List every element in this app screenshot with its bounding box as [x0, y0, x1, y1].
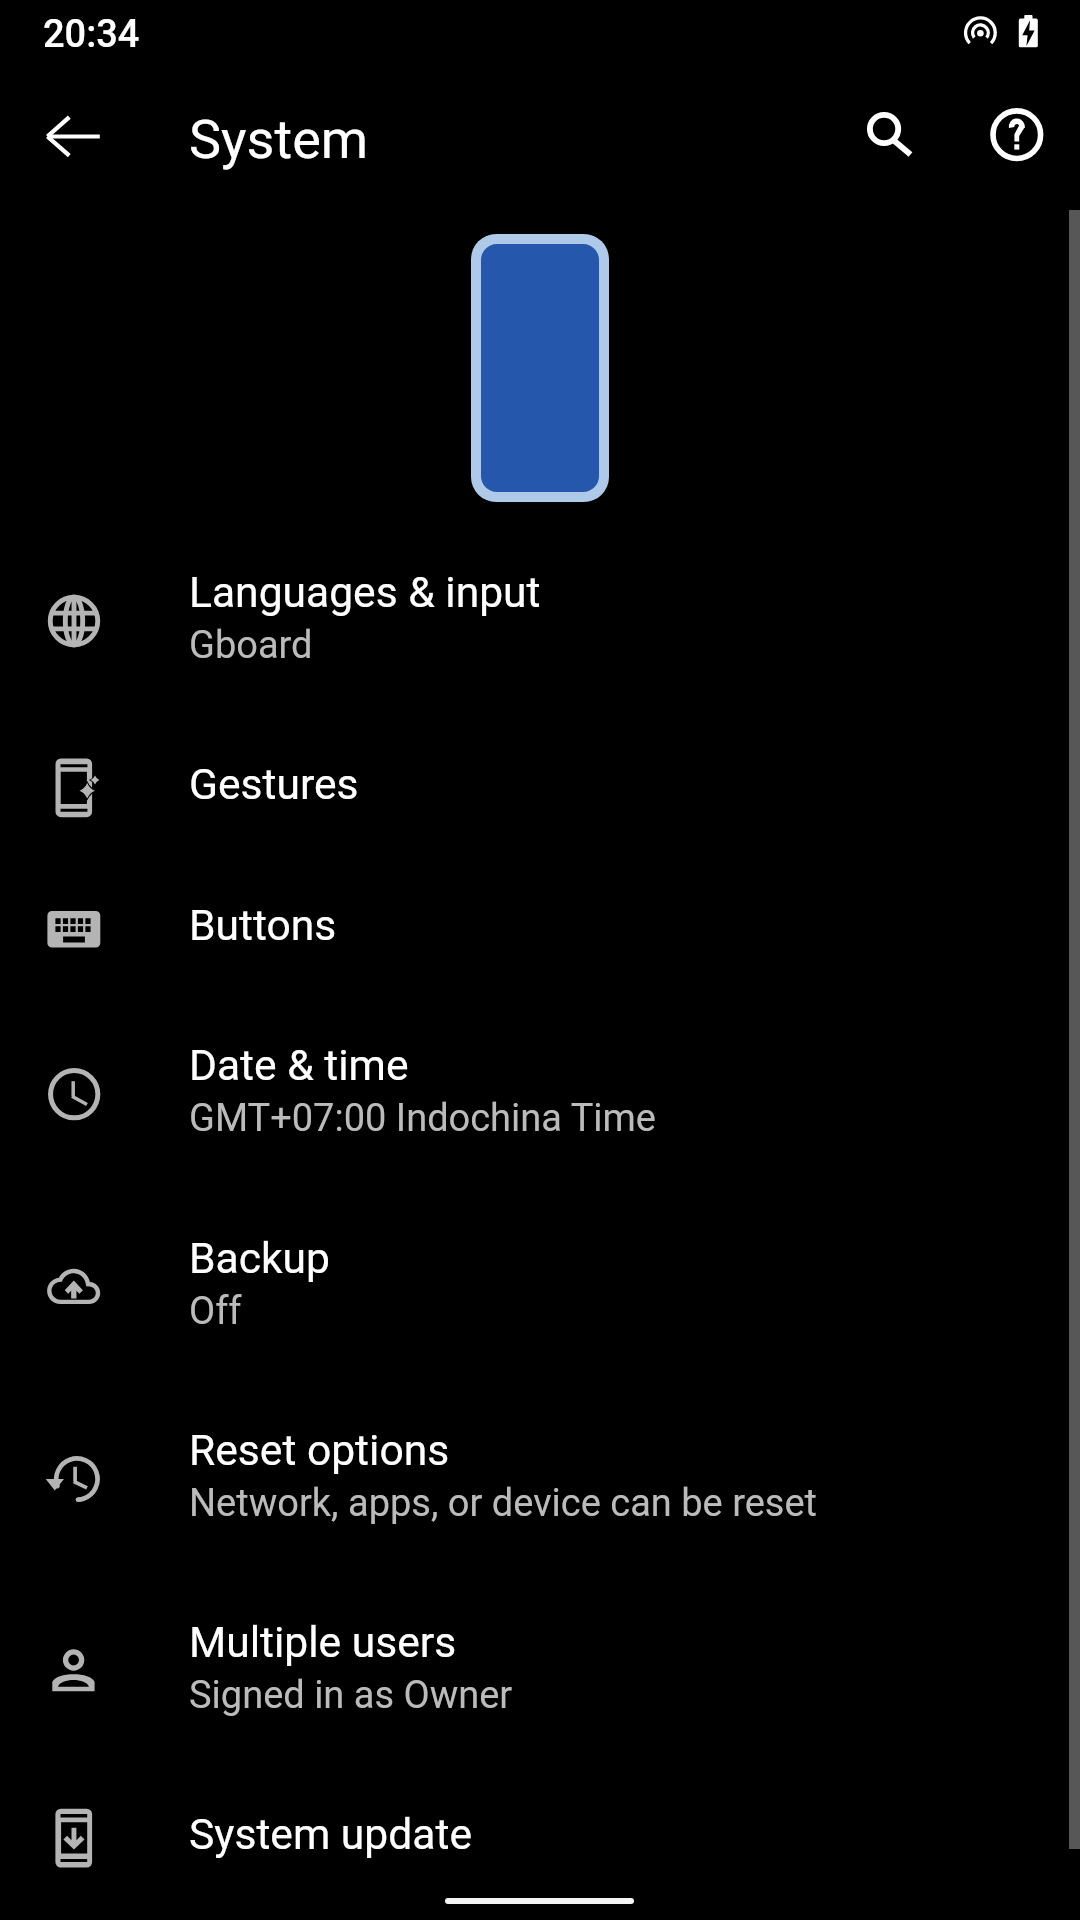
staticText: Date & time	[189, 1040, 409, 1090]
button[interactable]: Gestures	[0, 735, 1080, 876]
staticText: Gboard	[189, 623, 313, 668]
staticText: 20:34	[43, 12, 140, 57]
button[interactable]: Help	[969, 88, 1065, 184]
staticText: Buttons	[189, 900, 337, 950]
staticText: Languages & input	[189, 567, 541, 617]
staticText: Network, apps, or device can be reset	[189, 1481, 818, 1526]
button[interactable]: System update	[0, 1785, 1080, 1920]
staticText: GMT+07:00 Indochina Time	[189, 1096, 657, 1141]
button[interactable]: Languages & input	[0, 543, 1080, 735]
staticText: Off	[189, 1289, 242, 1334]
staticText: Multiple users	[189, 1617, 457, 1667]
button[interactable]: Buttons	[0, 876, 1080, 1017]
staticText: System update	[189, 1809, 472, 1859]
button[interactable]: Backup	[0, 1209, 1080, 1401]
button[interactable]: Multiple users	[0, 1593, 1080, 1785]
staticText: System	[189, 108, 369, 171]
button[interactable]: Back	[26, 89, 122, 185]
staticText: Gestures	[189, 759, 359, 809]
staticText: Backup	[189, 1233, 330, 1283]
button[interactable]: Search	[841, 89, 937, 185]
staticText: Signed in as Owner	[189, 1673, 513, 1718]
staticText: Reset options	[189, 1425, 450, 1475]
button[interactable]: Reset options	[0, 1401, 1080, 1593]
button[interactable]: Date & time	[0, 1016, 1080, 1208]
